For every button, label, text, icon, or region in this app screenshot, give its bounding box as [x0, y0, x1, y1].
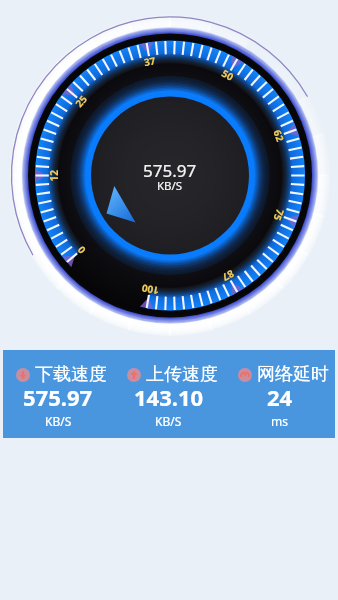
staticText: 24 [267, 382, 293, 412]
staticText: KB/S [45, 413, 72, 429]
staticText: KB/S [155, 413, 182, 429]
other: Upload speed [127, 368, 141, 382]
staticText: 575.97 [23, 382, 93, 412]
staticText: ms [271, 413, 288, 429]
button[interactable]: Upload speed [113, 350, 224, 438]
other: Download speed [16, 368, 30, 382]
button[interactable]: Download speed [3, 350, 113, 438]
button[interactable]: Network latency [224, 350, 335, 438]
staticText: 下载速度 [35, 363, 107, 386]
staticText: 上传速度 [146, 363, 218, 386]
staticText: 143.10 [134, 382, 204, 412]
staticText: 网络延时 [257, 363, 329, 386]
other: Network latency [238, 368, 252, 382]
